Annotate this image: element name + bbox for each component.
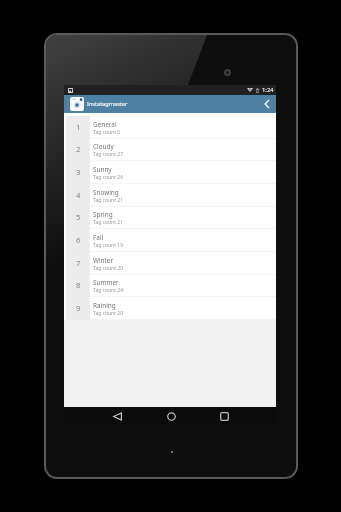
staticText: Cloudy [93, 142, 114, 151]
staticText: 9 [76, 303, 81, 314]
staticText: Instatagmaster [87, 100, 128, 108]
staticText: 3 [76, 167, 81, 178]
staticText: Tag count 24 [93, 287, 123, 294]
staticText: Summer [93, 278, 119, 287]
staticText: Tag count 21 [93, 219, 123, 226]
staticText: Tag count 27 [93, 151, 123, 158]
button[interactable]: 5 [64, 206, 276, 229]
staticText: Spring [93, 210, 113, 219]
staticText: 1:24 [262, 86, 274, 94]
staticText: 2 [76, 144, 81, 155]
button[interactable]: 8 [64, 274, 276, 297]
staticText: 8 [76, 280, 81, 291]
staticText: Tag count 21 [93, 197, 123, 204]
button[interactable]: 1 [64, 116, 276, 139]
button[interactable]: 3 [64, 161, 276, 184]
staticText: General [93, 120, 117, 129]
staticText: 1 [76, 122, 81, 133]
staticText: Tag count 20 [93, 265, 123, 272]
staticText: Sunny [93, 165, 112, 174]
button[interactable]: Home [153, 407, 189, 425]
staticText: 4 [76, 190, 81, 201]
staticText: Fall [93, 233, 104, 242]
staticText: Tag count 19 [93, 242, 123, 249]
button[interactable]: Recent apps [206, 407, 242, 425]
button[interactable]: 9 [64, 297, 276, 320]
button[interactable]: 6 [64, 229, 276, 252]
staticText: Tag count 0 [93, 129, 121, 136]
staticText: 5 [76, 212, 81, 223]
staticText: Tag count 20 [93, 310, 123, 317]
staticText: 6 [76, 235, 81, 246]
staticText: Winter [93, 256, 114, 265]
staticText: Snowing [93, 188, 119, 197]
staticText: 7 [76, 258, 81, 269]
button[interactable]: Back [258, 95, 276, 113]
button[interactable]: Back [99, 407, 135, 425]
staticText: Tag count 26 [93, 174, 123, 181]
button[interactable]: 2 [64, 138, 276, 161]
button[interactable]: 4 [64, 184, 276, 207]
button[interactable]: 7 [64, 252, 276, 275]
staticText: Raining [93, 301, 116, 310]
